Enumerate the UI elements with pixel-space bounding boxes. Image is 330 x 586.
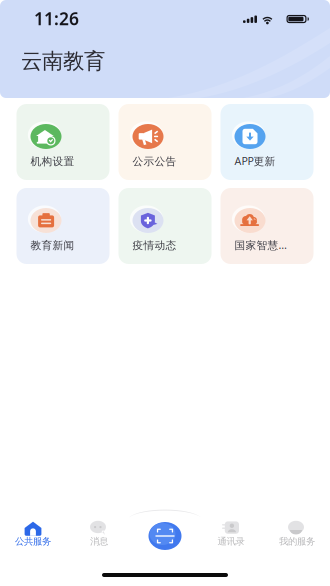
staticText: 机构设置	[30, 155, 74, 168]
button[interactable]: 扫一扫	[148, 522, 181, 550]
staticText: 疫情动态	[132, 239, 176, 252]
staticText: 公示公告	[132, 155, 176, 168]
staticText: 我的服务	[279, 536, 315, 547]
button[interactable]: 公共服务	[0, 508, 66, 552]
button[interactable]: APP更新	[220, 104, 313, 180]
button[interactable]: 疫情动态	[118, 188, 211, 264]
staticText: APP更新	[234, 154, 275, 168]
staticText: 消息	[90, 536, 108, 547]
button[interactable]: 消息	[66, 508, 132, 552]
button[interactable]: 我的服务	[264, 508, 330, 552]
staticText: 11:26	[34, 7, 79, 30]
button[interactable]: 公示公告	[118, 104, 211, 180]
staticText: 国家智慧…	[234, 238, 286, 252]
button[interactable]: 国家智慧…	[220, 188, 313, 264]
staticText: 云南教育	[21, 48, 105, 74]
button[interactable]: 教育新闻	[16, 188, 109, 264]
staticText: 公共服务	[15, 536, 51, 547]
staticText: 教育新闻	[30, 239, 74, 252]
staticText: 通讯录	[217, 536, 244, 547]
button[interactable]: 机构设置	[16, 104, 109, 180]
button[interactable]: 通讯录	[198, 508, 264, 552]
